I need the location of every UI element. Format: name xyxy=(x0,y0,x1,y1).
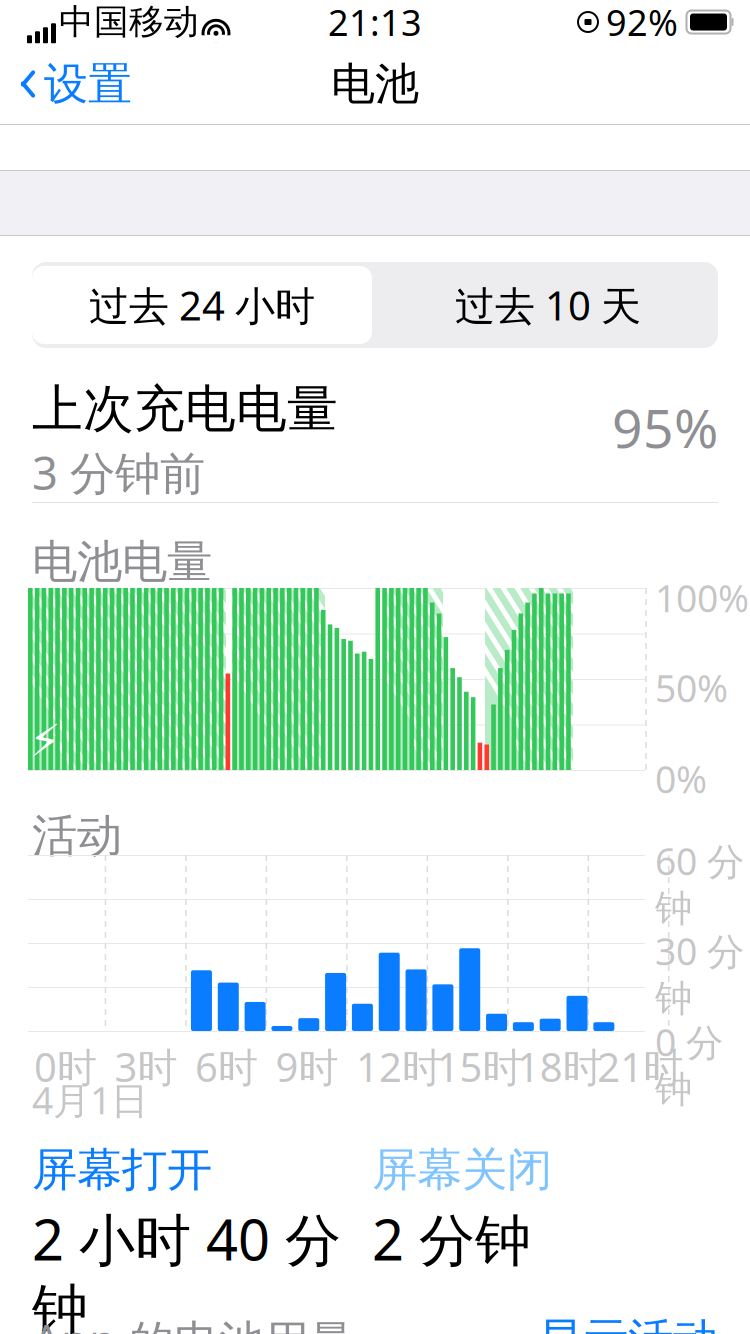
staticText: 电池电量 xyxy=(32,534,212,590)
staticText: 21时 xyxy=(597,1040,683,1093)
staticText: App 的电池用量 xyxy=(32,1310,354,1334)
staticText: 50% xyxy=(655,663,728,713)
staticText: 60 分钟 xyxy=(655,836,744,931)
staticText: 21:13 xyxy=(328,0,422,46)
staticText: 30 分钟 xyxy=(655,926,744,1021)
staticText: 3 分钟前 xyxy=(32,442,205,502)
staticText: 12时 xyxy=(356,1040,442,1093)
staticText: 2 小时 40 分钟 xyxy=(32,1202,341,1334)
staticText: 18时 xyxy=(517,1040,603,1093)
button[interactable]: 设置 xyxy=(0,49,146,119)
staticText: 显示活动 xyxy=(538,1312,718,1334)
staticText: 过去 24 小时 xyxy=(89,278,315,331)
button[interactable]: 显示活动 xyxy=(538,1312,718,1334)
staticText: 92% xyxy=(606,0,678,46)
staticText: 0% xyxy=(655,754,707,804)
staticText: 屏幕打开 xyxy=(32,1142,212,1198)
staticText: ⚡︎ xyxy=(29,715,61,767)
button[interactable]: 过去 10 天 xyxy=(375,263,721,347)
staticText: 过去 10 天 xyxy=(455,278,641,331)
staticText: 电池 xyxy=(331,57,419,111)
staticText: 15时 xyxy=(436,1040,522,1093)
staticText: 活动 xyxy=(32,808,122,864)
staticText: 上次充电电量 xyxy=(32,378,338,440)
button[interactable]: 过去 24 小时 xyxy=(29,263,375,347)
staticText: 9时 xyxy=(275,1040,338,1093)
staticText: 设置 xyxy=(44,57,132,111)
staticText: 0 分钟 xyxy=(655,1017,723,1112)
staticText: 4月1日 xyxy=(32,1075,148,1125)
staticText: 100% xyxy=(655,573,749,623)
staticText: 95% xyxy=(612,392,718,463)
staticText: 中国移动 xyxy=(59,1,199,43)
staticText: 3时 xyxy=(114,1040,177,1093)
staticText: 0时 xyxy=(34,1040,97,1093)
staticText: 2 分钟 xyxy=(372,1202,531,1276)
staticText: 6时 xyxy=(195,1040,258,1093)
staticText: 屏幕关闭 xyxy=(372,1142,552,1198)
